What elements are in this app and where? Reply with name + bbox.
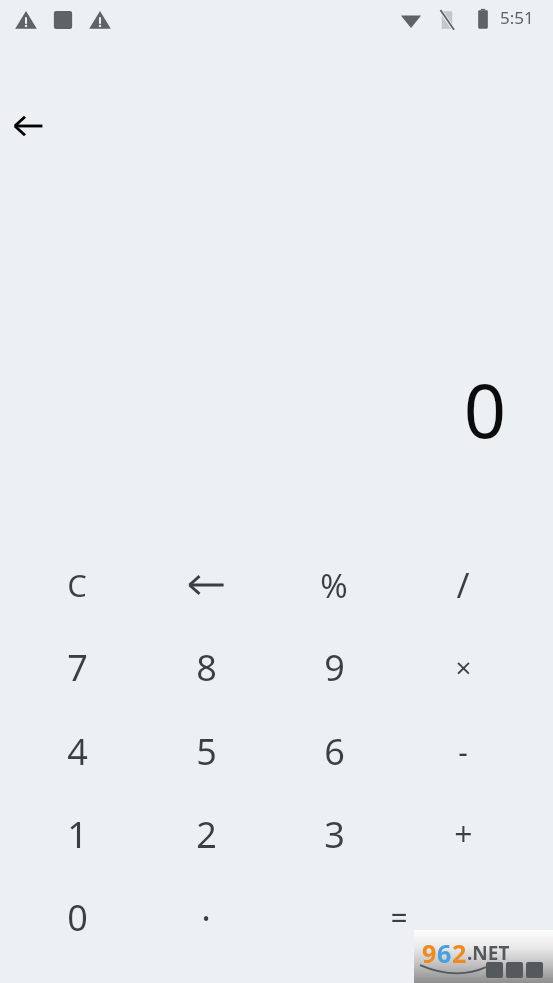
button[interactable]: / [408,546,518,624]
button[interactable]: 2 [151,795,261,873]
staticText: % [320,563,348,608]
staticText: .NET [467,940,510,966]
button[interactable]: % [279,546,389,624]
button[interactable]: 8 [151,628,261,706]
staticText: = [390,897,408,938]
button[interactable]: 9 [279,628,389,706]
staticText: 2 [196,810,217,859]
staticText: C [67,564,87,606]
staticText: / [456,561,470,609]
staticText: 0 [67,893,88,942]
staticText: 9 [422,936,437,970]
button[interactable]: C [22,546,132,624]
button[interactable]: 5 [151,712,261,790]
button[interactable]: - [408,712,518,790]
staticText: 5:51 [500,6,534,29]
staticText: 2 [452,936,467,970]
button[interactable]: · [151,878,261,956]
button[interactable]: 3 [279,795,389,873]
button[interactable]: Back [0,98,56,154]
staticText: - [458,731,468,772]
staticText: 7 [67,643,88,692]
button[interactable]: 0 [22,878,132,956]
staticText: 4 [67,727,88,776]
staticText: + [454,812,473,856]
staticText: 6 [437,936,452,970]
staticText: 8 [196,643,217,692]
staticText: · [201,893,211,942]
staticText: 9 [324,643,345,692]
staticText: × [455,648,472,686]
button[interactable]: × [408,628,518,706]
staticText: 1 [67,810,88,859]
button[interactable]: 6 [279,712,389,790]
staticText: 6 [324,727,345,776]
button[interactable]: + [408,795,518,873]
button[interactable]: 1 [22,795,132,873]
button[interactable]: 7 [22,628,132,706]
button[interactable]: Backspace [151,546,261,624]
button[interactable]: = [344,878,454,956]
staticText: 5 [196,727,217,776]
staticText: 0 [463,359,506,460]
button[interactable]: 4 [22,712,132,790]
staticText: 3 [324,810,345,859]
